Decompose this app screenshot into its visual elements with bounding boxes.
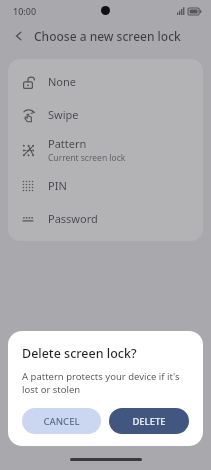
button[interactable]: CANCEL [22, 408, 101, 434]
button[interactable]: DELETE [109, 408, 189, 434]
button[interactable]: Swipe [8, 98, 203, 131]
staticText: Password [48, 211, 98, 226]
staticText: CANCEL [43, 415, 80, 428]
staticText: PIN [48, 178, 67, 193]
button[interactable]: Back [8, 25, 30, 47]
button[interactable]: Password [8, 202, 203, 235]
staticText: None [48, 74, 77, 89]
staticText: Delete screen lock? [22, 345, 137, 362]
button[interactable]: None [8, 65, 203, 98]
staticText: Current screen lock [48, 152, 126, 164]
button[interactable]: Pattern [8, 131, 203, 169]
staticText: DELETE [132, 415, 166, 428]
staticText: 10:00 [13, 5, 37, 17]
staticText: A pattern protects your device if it's l… [22, 370, 189, 396]
button[interactable]: PIN [8, 169, 203, 202]
staticText: Swipe [48, 107, 79, 122]
staticText: Pattern [48, 136, 87, 151]
staticText: Choose a new screen lock [34, 28, 181, 44]
